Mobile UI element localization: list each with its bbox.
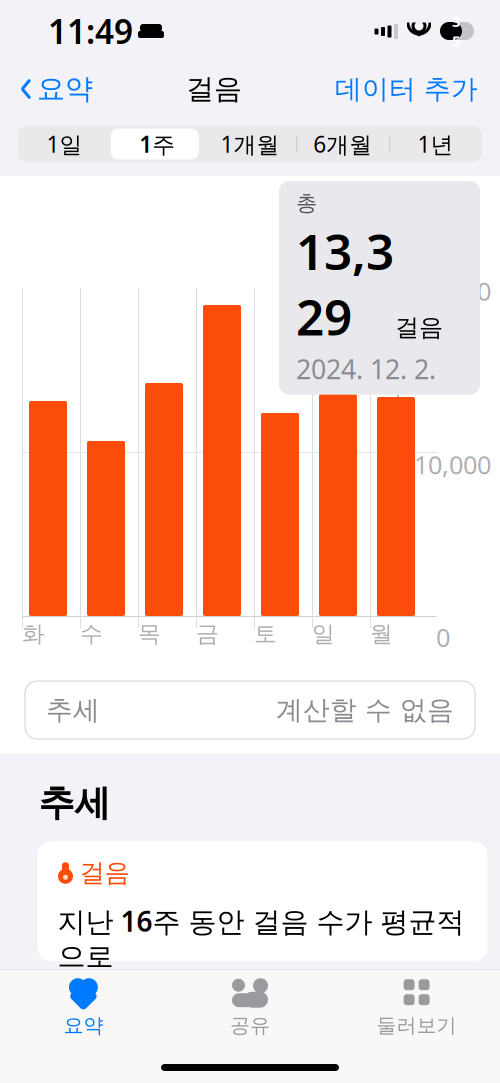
button[interactable]: 1년 [389, 126, 482, 162]
staticText: 요약 [63, 1013, 103, 1038]
button[interactable]: 요약 [0, 970, 167, 1044]
button[interactable]: 1개월 [204, 126, 296, 162]
button[interactable]: 6개월 [296, 126, 389, 162]
staticText: 1일 [46, 129, 82, 159]
staticText: 6개월 [313, 129, 372, 159]
staticText: 20,000 [414, 274, 491, 308]
staticText: 걸음 [395, 313, 443, 342]
button[interactable]: 요약 [14, 66, 99, 112]
staticText: 계산할 수 없음 [276, 694, 454, 726]
staticText: 0 [436, 620, 450, 654]
button[interactable]: 1일 [18, 126, 111, 162]
staticText: 수 [80, 620, 103, 648]
staticText: 1년 [418, 129, 454, 159]
button[interactable]: 1주 [111, 126, 204, 162]
staticText: 목 [138, 620, 161, 648]
button[interactable]: 둘러보기 [333, 970, 500, 1044]
staticText: 공유 [230, 1013, 270, 1038]
staticText: 1주 [139, 129, 175, 159]
staticText: 요약 [37, 72, 93, 106]
staticText: 추세 [38, 781, 110, 825]
staticText: 총 [296, 190, 317, 216]
staticText: 2024. 12. 2. [296, 351, 436, 387]
staticText: 지난 16주 동안 걸음 수가 평균적으로 [57, 902, 464, 974]
staticText: 화 [22, 620, 45, 648]
staticText: 월 [370, 620, 393, 648]
button[interactable]: 데이터 추가 [329, 67, 484, 111]
staticText: 13,329 [296, 218, 394, 349]
staticText: 35 [452, 11, 460, 50]
staticText: 토 [254, 620, 277, 648]
button[interactable]: 걸음 [37, 841, 487, 961]
staticText: 금 [196, 620, 219, 648]
staticText: 일 [312, 620, 335, 648]
staticText: 걸음 [79, 857, 129, 888]
staticText: 1개월 [220, 129, 279, 159]
staticText: 추세 [46, 694, 100, 726]
button[interactable]: 공유 [167, 970, 333, 1044]
staticText: 걸음 [186, 72, 242, 106]
staticText: 10,000 [414, 448, 491, 481]
staticText: 둘러보기 [377, 1013, 457, 1038]
staticText: 늘었습니다. [57, 974, 205, 1011]
staticText: 11:49 [48, 9, 133, 53]
staticText: 데이터 추가 [335, 73, 478, 105]
